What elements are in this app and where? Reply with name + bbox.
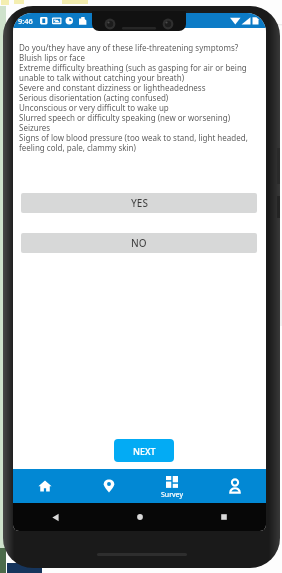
staticText: NEXT (133, 445, 156, 457)
staticText: Do you/they have any of these life-threa… (19, 42, 248, 153)
button[interactable]: NEXT (114, 439, 174, 462)
staticText: Survey (161, 490, 183, 500)
other: Back (51, 513, 60, 522)
button[interactable]: Profile (203, 469, 266, 503)
staticText: NO (131, 236, 147, 250)
button[interactable]: Home (13, 469, 77, 503)
button[interactable]: Places (77, 469, 140, 503)
other: Recents (220, 513, 228, 521)
button[interactable]: YES (21, 193, 257, 213)
staticText: 9:46 (18, 16, 33, 26)
button[interactable]: Survey (140, 469, 203, 503)
other: Home (136, 513, 144, 521)
staticText: YES (131, 196, 148, 210)
button[interactable]: NO (21, 233, 257, 253)
